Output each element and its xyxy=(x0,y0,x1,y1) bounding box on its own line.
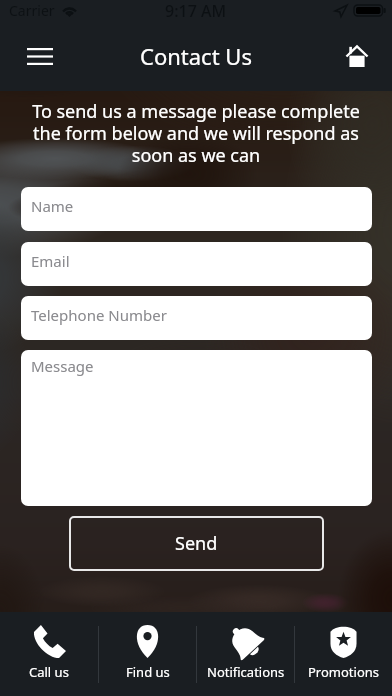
staticText: Call us xyxy=(29,663,69,681)
button[interactable]: Find us xyxy=(99,612,196,696)
staticText: Notifications xyxy=(207,663,285,681)
button[interactable]: Name xyxy=(21,187,372,231)
staticText: 9:17 AM xyxy=(165,0,227,21)
button[interactable]: Message xyxy=(21,350,372,506)
button[interactable]: Email xyxy=(21,242,372,286)
button[interactable]: Telephone Number xyxy=(21,296,372,340)
staticText: Telephone Number xyxy=(31,305,167,325)
staticText: To send us a message please complete the… xyxy=(22,99,370,167)
staticText: Promotions xyxy=(308,663,380,681)
staticText: Contact Us xyxy=(140,41,252,71)
staticText: Send xyxy=(175,531,218,556)
button[interactable]: Home xyxy=(335,34,379,78)
button[interactable]: Promotions xyxy=(295,612,392,696)
staticText: Carrier xyxy=(9,1,55,20)
staticText: Name xyxy=(31,196,74,216)
staticText: Email xyxy=(31,251,70,271)
button[interactable]: Menu xyxy=(16,32,64,80)
button[interactable]: Send xyxy=(69,516,324,571)
staticText: Find us xyxy=(126,663,170,681)
button[interactable]: Notifications xyxy=(197,612,294,696)
button[interactable]: Call us xyxy=(0,612,98,696)
staticText: Message xyxy=(31,356,94,376)
